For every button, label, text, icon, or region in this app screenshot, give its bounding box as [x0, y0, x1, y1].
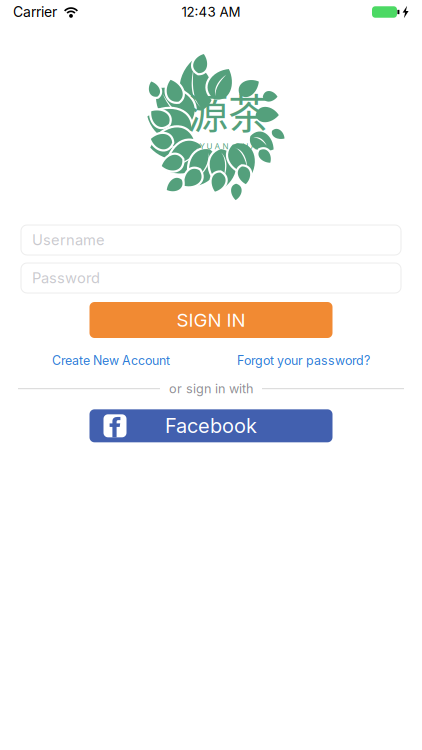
button[interactable]: Facebook — [89, 409, 332, 442]
staticText: or sign in with — [169, 381, 253, 396]
button[interactable]: SIGN IN — [89, 302, 332, 338]
staticText: Username — [32, 231, 105, 249]
button[interactable]: Create New Account — [52, 353, 170, 368]
staticText: 12:43 AM — [181, 4, 240, 20]
staticText: Y U A N C H A — [199, 142, 256, 151]
button[interactable]: Forgot your password? — [237, 353, 370, 368]
staticText: Forgot your password? — [237, 353, 370, 368]
staticText: Carrier — [13, 3, 57, 20]
staticText: Password — [32, 269, 100, 287]
staticText: 源茶 — [187, 81, 269, 141]
staticText: Facebook — [165, 414, 257, 438]
staticText: SIGN IN — [176, 309, 245, 331]
staticText: Create New Account — [52, 353, 170, 368]
